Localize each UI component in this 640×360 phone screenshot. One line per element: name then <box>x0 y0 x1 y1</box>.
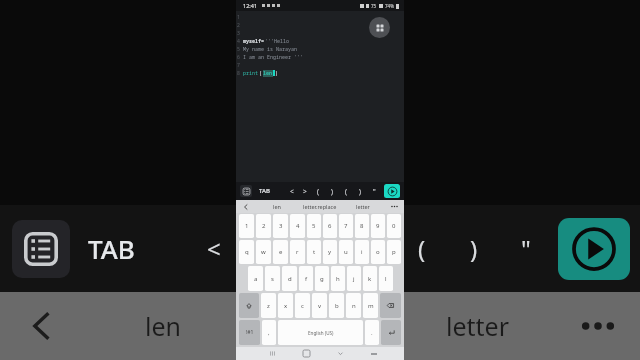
button[interactable]: 5 <box>307 214 321 238</box>
button[interactable]: !#1 <box>239 320 260 345</box>
button[interactable]: ) <box>353 182 367 200</box>
button[interactable]: i <box>355 240 369 264</box>
button[interactable]: g <box>315 266 329 291</box>
button[interactable]: u <box>339 240 353 264</box>
button[interactable]: Lines <box>240 185 252 197</box>
staticText: ( <box>317 187 319 196</box>
button[interactable]: 6 <box>323 214 337 238</box>
button[interactable]: More <box>556 292 640 360</box>
button[interactable]: 4 <box>290 214 305 238</box>
button[interactable]: Recents <box>255 347 289 360</box>
button[interactable]: > <box>240 205 292 292</box>
button[interactable]: , <box>262 320 276 345</box>
staticText: d <box>288 275 292 283</box>
button[interactable]: p <box>387 240 401 264</box>
button[interactable]: c <box>295 293 310 318</box>
button[interactable]: s <box>265 266 280 291</box>
button[interactable]: m <box>363 293 378 318</box>
button[interactable]: n <box>346 293 361 318</box>
button[interactable]: . <box>365 320 379 345</box>
button[interactable]: Lines <box>12 220 70 278</box>
button[interactable]: len <box>84 292 242 360</box>
staticText: 0 <box>392 222 396 230</box>
button[interactable]: o <box>371 240 385 264</box>
button[interactable]: d <box>282 266 297 291</box>
button[interactable]: q <box>239 240 254 264</box>
button[interactable]: ) <box>448 205 500 292</box>
staticText: > <box>303 187 307 196</box>
button[interactable]: Enter <box>381 320 401 345</box>
button[interactable]: TAB <box>88 231 135 266</box>
button[interactable]: x <box>278 293 293 318</box>
staticText: p <box>392 248 396 256</box>
staticText: l <box>385 275 387 283</box>
staticText: u <box>344 248 348 256</box>
button[interactable]: w <box>256 240 271 264</box>
button[interactable]: letter <box>399 292 556 360</box>
button[interactable]: ( <box>339 182 353 200</box>
button[interactable]: Back <box>0 292 84 360</box>
button[interactable]: Run <box>558 218 630 280</box>
staticText: print <box>243 70 259 77</box>
button[interactable]: 9 <box>371 214 385 238</box>
staticText: w <box>261 248 266 256</box>
staticText: len <box>273 203 281 210</box>
button[interactable]: letter <box>341 200 384 213</box>
button[interactable]: Home <box>289 347 323 360</box>
button[interactable]: " <box>500 205 552 292</box>
staticText: 5 <box>312 222 316 230</box>
button[interactable]: < <box>188 205 240 292</box>
button[interactable]: Hide keyboard <box>323 347 357 360</box>
button[interactable]: " <box>367 182 381 200</box>
staticText: " <box>521 232 531 265</box>
button[interactable]: > <box>298 182 311 200</box>
button[interactable]: 7 <box>339 214 353 238</box>
button[interactable]: TAB <box>257 187 272 195</box>
staticText: f <box>305 275 308 283</box>
staticText: . <box>371 329 373 337</box>
staticText: ( <box>314 232 322 265</box>
button[interactable]: j <box>347 266 361 291</box>
button[interactable]: e <box>273 240 288 264</box>
staticText: g <box>320 275 324 283</box>
button[interactable]: 0 <box>387 214 401 238</box>
button[interactable]: t <box>307 240 321 264</box>
button[interactable]: r <box>290 240 305 264</box>
button[interactable]: English (US) <box>278 320 363 345</box>
button[interactable]: Shift <box>239 293 259 318</box>
button[interactable]: a <box>248 266 263 291</box>
button[interactable]: ( <box>396 205 448 292</box>
button[interactable]: y <box>323 240 337 264</box>
staticText: 6 <box>328 222 332 230</box>
button[interactable]: 8 <box>355 214 369 238</box>
button[interactable]: z <box>261 293 276 318</box>
button[interactable]: letter.replace <box>242 292 399 360</box>
button[interactable]: Backspace <box>380 293 401 318</box>
button[interactable]: f <box>299 266 313 291</box>
staticText: ) <box>470 232 478 265</box>
button[interactable]: ( <box>292 205 344 292</box>
button[interactable]: k <box>363 266 377 291</box>
button[interactable]: l <box>379 266 393 291</box>
button[interactable]: More <box>384 200 404 213</box>
button[interactable]: 2 <box>256 214 271 238</box>
button[interactable]: Run <box>384 184 400 198</box>
button[interactable]: len <box>256 200 298 213</box>
button[interactable]: ( <box>311 182 325 200</box>
button[interactable]: Back <box>236 200 256 213</box>
button[interactable]: letter.replace <box>298 200 341 213</box>
button[interactable]: h <box>331 266 345 291</box>
button[interactable]: ) <box>344 205 396 292</box>
button[interactable]: < <box>285 182 298 200</box>
button[interactable]: ) <box>325 182 339 200</box>
staticText: len <box>145 309 182 343</box>
button[interactable]: 1 <box>239 214 254 238</box>
button[interactable]: b <box>329 293 344 318</box>
staticText: h <box>336 275 340 283</box>
staticText: ) <box>331 187 333 196</box>
staticText: o <box>376 248 380 256</box>
button[interactable]: Open tools <box>369 17 390 38</box>
button[interactable]: 3 <box>273 214 288 238</box>
button[interactable]: v <box>312 293 327 318</box>
staticText: 1 <box>245 222 249 230</box>
